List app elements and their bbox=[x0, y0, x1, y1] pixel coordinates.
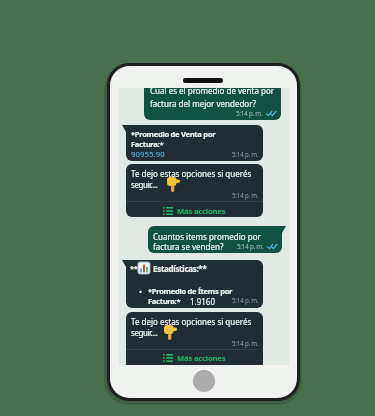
staticText: 1.9160 bbox=[190, 296, 216, 307]
staticText: Cual es el promedio de venta por bbox=[150, 88, 275, 96]
staticText: 5:14 p. m. bbox=[232, 191, 259, 199]
button[interactable]: Más acciones bbox=[163, 206, 226, 216]
staticText: Te dejo estas opciones si querés bbox=[131, 168, 252, 179]
staticText: ** bbox=[130, 263, 138, 273]
staticText: 5:14 p. m. bbox=[232, 150, 259, 158]
staticText: 5:14 p. m. bbox=[237, 242, 264, 250]
button[interactable] bbox=[193, 370, 215, 392]
staticText: seguir.... bbox=[131, 327, 158, 338]
button[interactable]: *Promedio de Venta por bbox=[126, 125, 263, 161]
staticText: factura del mejor vendedor? bbox=[150, 98, 256, 109]
staticText: 5:14 p. m. bbox=[236, 109, 263, 117]
staticText: seguir.... bbox=[131, 179, 158, 190]
button[interactable]: Cuantos items promedio por bbox=[148, 226, 282, 253]
button[interactable]: ** bbox=[126, 260, 263, 308]
staticText: Factura:* bbox=[131, 139, 164, 149]
staticText: 5:14 p. m. bbox=[232, 296, 259, 304]
staticText: 90955.90 bbox=[131, 149, 165, 160]
staticText: factura se venden? bbox=[153, 241, 224, 252]
staticText: • bbox=[139, 286, 143, 297]
button[interactable]: Más acciones bbox=[163, 353, 226, 363]
staticText: 5:14 p. m. bbox=[232, 339, 259, 347]
staticText: Estadísticas:** bbox=[153, 263, 207, 274]
staticText: Más acciones bbox=[177, 206, 226, 216]
button[interactable]: Cual es el promedio de venta por bbox=[144, 88, 281, 120]
staticText: *Promedio de Venta por bbox=[131, 129, 216, 139]
staticText: Factura:* bbox=[148, 296, 181, 306]
staticText: Te dejo estas opciones si querés bbox=[131, 316, 252, 327]
staticText: *Promedio de Ítems por bbox=[148, 286, 233, 296]
staticText: Cuantos items promedio por bbox=[153, 231, 261, 242]
staticText: Más acciones bbox=[177, 353, 226, 363]
